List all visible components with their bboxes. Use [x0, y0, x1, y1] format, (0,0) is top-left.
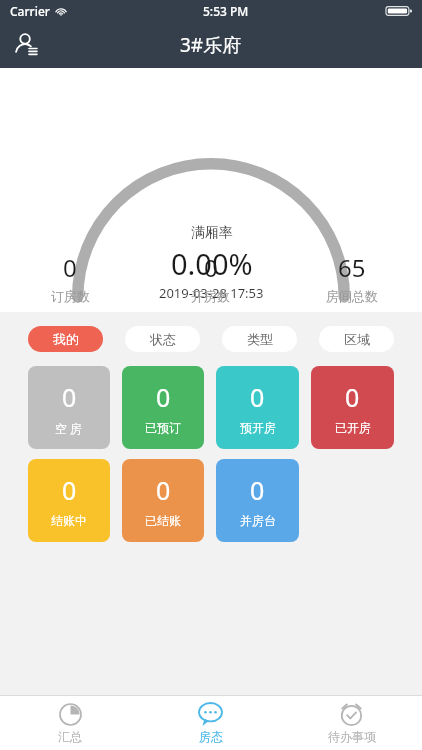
button[interactable]: 0 — [28, 459, 110, 542]
staticText: 2019-03-28 17:53 — [159, 284, 264, 302]
button[interactable]: 类型 — [222, 326, 297, 352]
staticText: 0 — [63, 251, 77, 284]
staticText: 0.00% — [171, 244, 253, 283]
staticText: 0 — [156, 380, 171, 414]
staticText: 3#乐府 — [180, 32, 242, 58]
button[interactable]: 0 — [216, 459, 299, 542]
button[interactable]: Account — [6, 24, 48, 66]
button[interactable]: 汇总 — [0, 696, 140, 750]
button[interactable]: 待办事项 — [281, 696, 422, 750]
staticText: 0 — [250, 380, 265, 414]
staticText: 0 — [62, 473, 77, 507]
staticText: 已开房 — [335, 420, 371, 435]
button[interactable]: 65 — [281, 251, 422, 304]
staticText: 并房台 — [240, 513, 276, 528]
staticText: 类型 — [247, 331, 273, 347]
staticText: 订房数 — [51, 288, 90, 304]
button[interactable]: 0 — [311, 366, 394, 449]
staticText: 区域 — [344, 331, 370, 347]
staticText: 房态 — [199, 729, 223, 744]
staticText: 5:53 PM — [203, 3, 249, 19]
staticText: 汇总 — [58, 729, 82, 744]
button[interactable]: 0 — [122, 459, 204, 542]
staticText: 房间总数 — [326, 288, 378, 304]
button[interactable]: 房态 — [140, 696, 281, 750]
staticText: 开房数 — [191, 288, 230, 304]
staticText: 0 — [204, 251, 218, 284]
button[interactable]: 0 — [122, 366, 204, 449]
staticText: 满厢率 — [191, 224, 233, 242]
staticText: Carrier — [10, 3, 50, 19]
button[interactable]: 区域 — [319, 326, 394, 352]
staticText: 0 — [62, 380, 77, 414]
staticText: 结账中 — [51, 513, 87, 528]
button[interactable]: 0 — [28, 366, 110, 449]
staticText: 待办事项 — [328, 729, 376, 744]
staticText: 0 — [250, 473, 265, 507]
button[interactable]: 0 — [216, 366, 299, 449]
staticText: 0 — [345, 380, 360, 414]
button[interactable]: 我的 — [28, 326, 103, 352]
button[interactable]: 状态 — [125, 326, 200, 352]
staticText: 0 — [156, 473, 171, 507]
staticText: 空 房 — [55, 420, 83, 436]
staticText: 预开房 — [240, 420, 276, 435]
staticText: 已预订 — [145, 420, 181, 435]
staticText: 已结账 — [145, 513, 181, 528]
staticText: 我的 — [53, 331, 79, 347]
button[interactable]: 0 — [0, 251, 140, 304]
button[interactable]: 0 — [140, 251, 281, 304]
staticText: 65 — [338, 251, 366, 284]
staticText: 状态 — [150, 331, 176, 347]
